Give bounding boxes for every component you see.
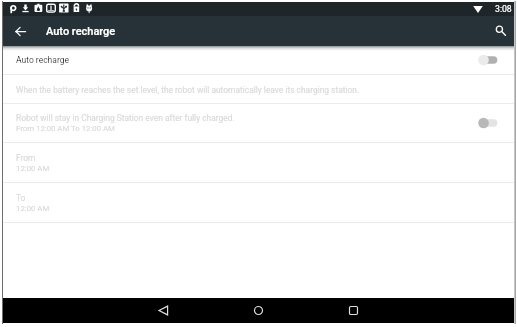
staticText: 12:00 AM xyxy=(16,204,50,213)
staticText: Robot will stay in Charging Station even… xyxy=(16,113,235,123)
staticText: 12:00 AM xyxy=(16,164,50,173)
button[interactable]: Navigate up xyxy=(8,19,32,43)
button[interactable]: Auto recharge xyxy=(3,46,514,74)
button[interactable]: Recent apps xyxy=(341,298,366,323)
button[interactable]: Auto recharge switch, off xyxy=(472,51,505,69)
staticText: From 12:00 AM To 12:00 AM xyxy=(16,124,115,133)
button[interactable]: Robot will stay in Charging Station even… xyxy=(3,104,514,142)
button[interactable]: Search xyxy=(489,19,513,43)
staticText: Auto recharge xyxy=(46,25,116,38)
staticText: When the battery reaches the set level, … xyxy=(16,85,360,95)
button[interactable]: Charging station switch, disabled xyxy=(472,114,505,132)
staticText: From xyxy=(16,153,36,163)
button[interactable]: Back xyxy=(151,298,176,323)
staticText: To xyxy=(16,193,26,203)
button[interactable]: Home xyxy=(246,298,271,323)
staticText: Auto recharge xyxy=(16,55,69,65)
staticText: 3:08 xyxy=(495,4,512,14)
